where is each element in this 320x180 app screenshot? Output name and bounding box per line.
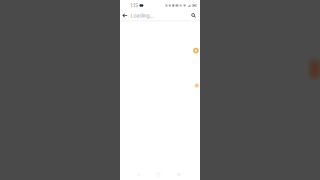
button[interactable]: System back bbox=[135, 171, 141, 178]
button[interactable]: Recents bbox=[175, 171, 182, 178]
staticText: 1:15 bbox=[130, 2, 138, 8]
button[interactable]: Search bbox=[189, 11, 197, 19]
staticText: Loading… bbox=[130, 12, 153, 19]
button[interactable]: Home bbox=[155, 171, 162, 178]
button[interactable]: Back bbox=[121, 12, 128, 19]
